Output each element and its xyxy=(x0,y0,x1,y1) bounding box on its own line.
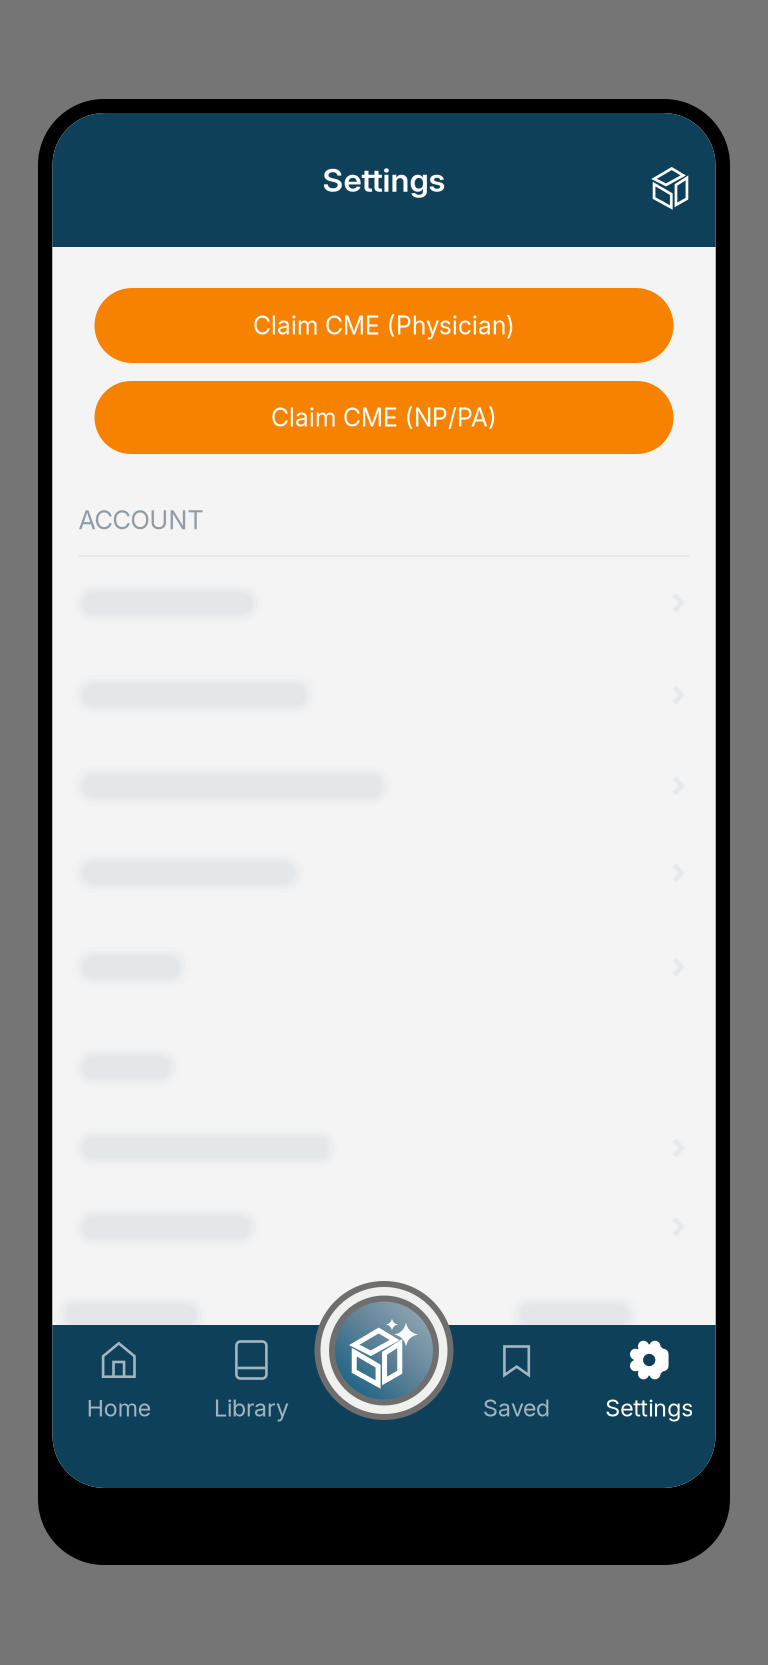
button[interactable] xyxy=(318,1325,450,1488)
button[interactable] xyxy=(52,557,715,649)
button[interactable] xyxy=(52,1019,715,1115)
button[interactable] xyxy=(52,1181,715,1273)
button[interactable]: Settings xyxy=(583,1325,715,1488)
button[interactable] xyxy=(52,831,715,915)
staticText: Settings xyxy=(605,1394,693,1422)
button[interactable]: 3D viewer xyxy=(638,148,702,212)
staticText: ACCOUNT xyxy=(78,505,203,535)
staticText: Saved xyxy=(483,1394,550,1422)
staticText: Claim CME (Physician) xyxy=(253,311,515,340)
button[interactable]: Saved xyxy=(450,1325,583,1488)
button[interactable]: Library xyxy=(185,1325,318,1488)
button[interactable]: Claim CME (Physician) xyxy=(94,288,673,363)
button[interactable]: Claim CME (NP/PA) xyxy=(94,381,673,454)
button[interactable]: Create xyxy=(314,1281,453,1420)
button[interactable] xyxy=(52,1115,715,1181)
staticText: Claim CME (NP/PA) xyxy=(271,403,497,432)
staticText: Settings xyxy=(322,161,445,199)
staticText: Home xyxy=(87,1394,151,1422)
button[interactable]: Home xyxy=(52,1325,185,1488)
button[interactable] xyxy=(52,915,715,1019)
staticText: Library xyxy=(214,1394,289,1422)
button[interactable] xyxy=(52,741,715,831)
button[interactable] xyxy=(52,649,715,741)
